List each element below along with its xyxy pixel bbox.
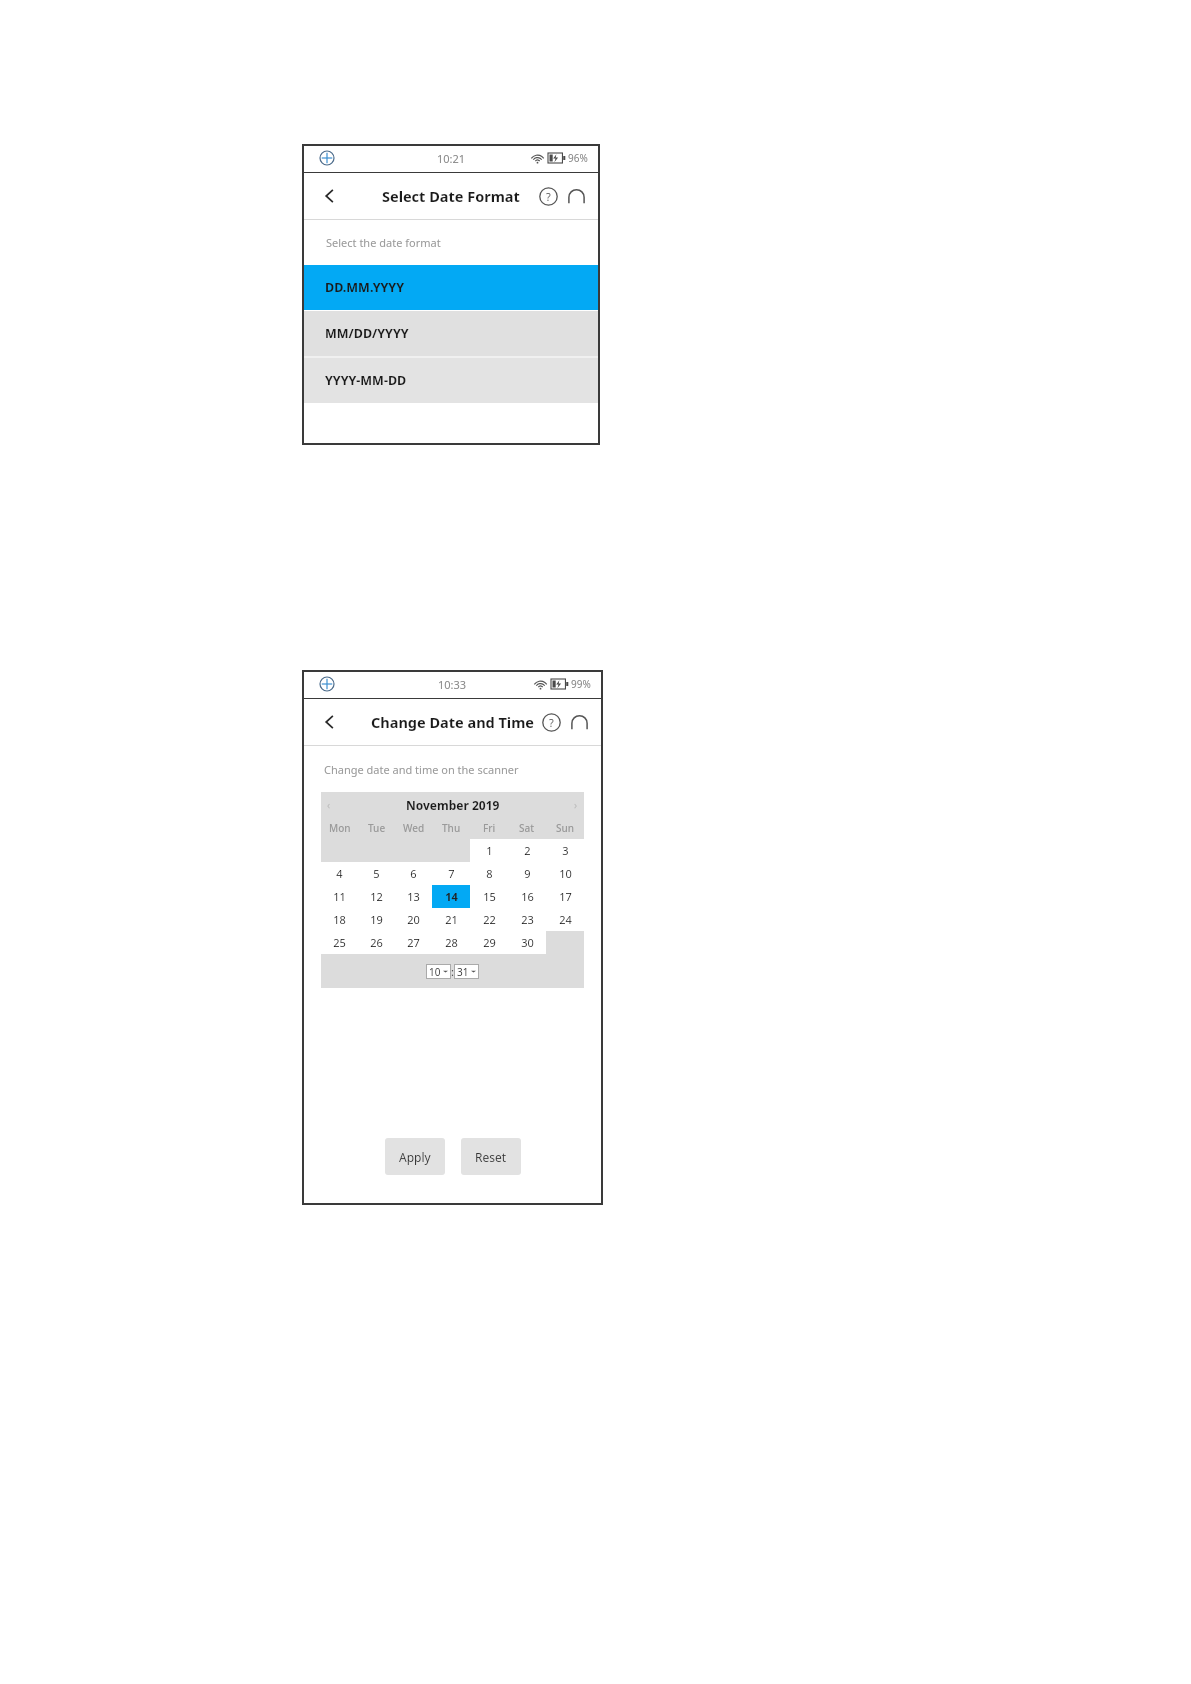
button[interactable]: 17 (546, 885, 584, 908)
staticText: : (451, 964, 454, 979)
button[interactable]: Back (320, 186, 340, 206)
button[interactable]: Add (319, 676, 335, 692)
button[interactable]: 20 (395, 908, 432, 931)
staticText: 23 (521, 912, 534, 927)
staticText: 17 (559, 889, 572, 904)
staticText: 10 (559, 866, 572, 881)
button[interactable]: 14 (432, 885, 470, 908)
button[interactable]: 10 (429, 964, 448, 979)
staticText: 4 (336, 866, 343, 881)
staticText: 96% (568, 151, 588, 165)
button[interactable]: 15 (470, 885, 508, 908)
staticText: 12 (370, 889, 383, 904)
button[interactable]: 1 (470, 839, 508, 862)
button[interactable]: Home (567, 187, 586, 206)
staticText: Wed (403, 821, 425, 835)
staticText: 31 (457, 965, 469, 979)
staticText: ? (546, 189, 551, 204)
button[interactable]: 23 (508, 908, 546, 931)
button[interactable]: Reset (461, 1138, 521, 1175)
button[interactable]: 2 (508, 839, 546, 862)
button[interactable]: 7 (432, 862, 470, 885)
staticText: Apply (399, 1149, 431, 1165)
staticText: 20 (407, 912, 420, 927)
staticText: Select Date Format (382, 186, 520, 206)
staticText: Change date and time on the scanner (324, 762, 519, 777)
staticText: 11 (333, 889, 346, 904)
staticText: 9 (524, 866, 531, 881)
button[interactable]: 19 (358, 908, 395, 931)
staticText: ? (549, 715, 554, 730)
button[interactable]: 30 (508, 931, 546, 954)
staticText: 16 (521, 889, 534, 904)
staticText: 10:33 (438, 677, 467, 692)
staticText: 6 (410, 866, 417, 881)
staticText: 14 (445, 889, 458, 904)
staticText: 2 (524, 843, 531, 858)
staticText: 25 (333, 935, 346, 950)
button[interactable]: 29 (470, 931, 508, 954)
staticText: 28 (445, 935, 458, 950)
button[interactable]: 31 (457, 964, 476, 979)
staticText: Reset (475, 1149, 507, 1165)
button[interactable]: YYYY-MM-DD (302, 358, 600, 403)
staticText: Tue (368, 821, 386, 835)
button[interactable]: 11 (321, 885, 358, 908)
button[interactable]: 16 (508, 885, 546, 908)
button[interactable]: DD.MM.YYYY (302, 265, 600, 310)
button[interactable]: 27 (395, 931, 432, 954)
staticText: 1 (486, 843, 493, 858)
button[interactable]: › (574, 798, 578, 812)
button[interactable]: Help (539, 187, 558, 206)
staticText: 5 (373, 866, 380, 881)
button[interactable]: Home (570, 713, 589, 732)
button[interactable]: 8 (470, 862, 508, 885)
staticText: 29 (483, 935, 496, 950)
staticText: MM/DD/YYYY (325, 325, 409, 342)
staticText: 21 (445, 912, 458, 927)
button[interactable]: 6 (395, 862, 432, 885)
button[interactable]: 26 (358, 931, 395, 954)
staticText: 7 (448, 866, 455, 881)
button[interactable]: 25 (321, 931, 358, 954)
staticText: November 2019 (406, 797, 500, 813)
button[interactable]: Apply (385, 1138, 445, 1175)
staticText: Sat (519, 821, 535, 835)
staticText: 10 (429, 965, 441, 979)
button[interactable]: MM/DD/YYYY (302, 311, 600, 356)
button[interactable]: 21 (432, 908, 470, 931)
button[interactable]: 5 (358, 862, 395, 885)
button[interactable]: 4 (321, 862, 358, 885)
staticText: Fri (483, 821, 496, 835)
staticText: 99% (571, 677, 591, 691)
staticText: Thu (442, 821, 461, 835)
button[interactable]: Back (320, 712, 340, 732)
staticText: 26 (370, 935, 383, 950)
staticText: 19 (370, 912, 383, 927)
button[interactable]: ‹ (327, 798, 331, 812)
button[interactable]: 18 (321, 908, 358, 931)
staticText: 30 (521, 935, 534, 950)
staticText: 18 (333, 912, 346, 927)
staticText: 10:21 (437, 151, 466, 166)
button[interactable]: 10 (546, 862, 584, 885)
button[interactable]: 9 (508, 862, 546, 885)
button[interactable]: 13 (395, 885, 432, 908)
staticText: 24 (559, 912, 572, 927)
staticText: Sun (556, 821, 575, 835)
button[interactable]: 3 (546, 839, 584, 862)
staticText: 3 (562, 843, 569, 858)
staticText: DD.MM.YYYY (325, 279, 404, 296)
staticText: YYYY-MM-DD (325, 372, 407, 389)
staticText: 8 (486, 866, 493, 881)
staticText: Select the date format (326, 235, 441, 250)
staticText: 22 (483, 912, 496, 927)
button[interactable]: Add (319, 150, 335, 166)
staticText: Change Date and Time (371, 712, 534, 732)
button[interactable]: 22 (470, 908, 508, 931)
button[interactable]: 28 (432, 931, 470, 954)
button[interactable]: 24 (546, 908, 584, 931)
staticText: Mon (329, 821, 351, 835)
button[interactable]: Help (542, 713, 561, 732)
button[interactable]: 12 (358, 885, 395, 908)
